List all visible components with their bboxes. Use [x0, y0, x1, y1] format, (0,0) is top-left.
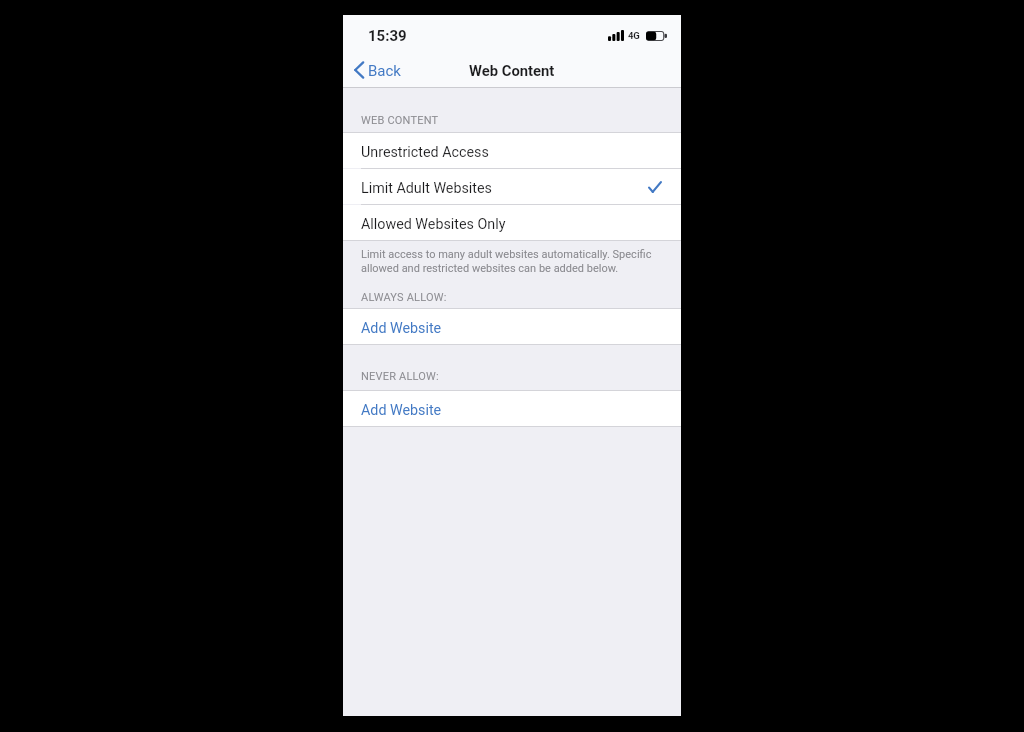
staticText: NEVER ALLOW: [361, 370, 439, 383]
staticText: Web Content [469, 62, 555, 79]
other: Back [354, 61, 364, 79]
button[interactable]: Add Website [343, 309, 681, 344]
staticText: ALWAYS ALLOW: [361, 291, 447, 304]
button[interactable]: Add Website [343, 391, 681, 426]
staticText: 4G [628, 30, 640, 41]
other: Selected [648, 181, 662, 193]
button[interactable]: Allowed Websites Only [343, 205, 681, 240]
staticText: 15:39 [368, 27, 407, 45]
button[interactable]: Back [343, 53, 415, 88]
staticText: Unrestricted Access [361, 144, 489, 161]
staticText: Limit Adult Websites [361, 180, 492, 197]
staticText: Allowed Websites Only [361, 216, 506, 233]
staticText: WEB CONTENT [361, 114, 439, 127]
staticText: Add Website [361, 402, 442, 419]
staticText: Back [368, 62, 401, 80]
button[interactable]: Limit Adult Websites [343, 169, 681, 204]
button[interactable]: Unrestricted Access [343, 133, 681, 168]
staticText: Add Website [361, 320, 442, 337]
staticText: Limit access to many adult websites auto… [361, 248, 661, 275]
